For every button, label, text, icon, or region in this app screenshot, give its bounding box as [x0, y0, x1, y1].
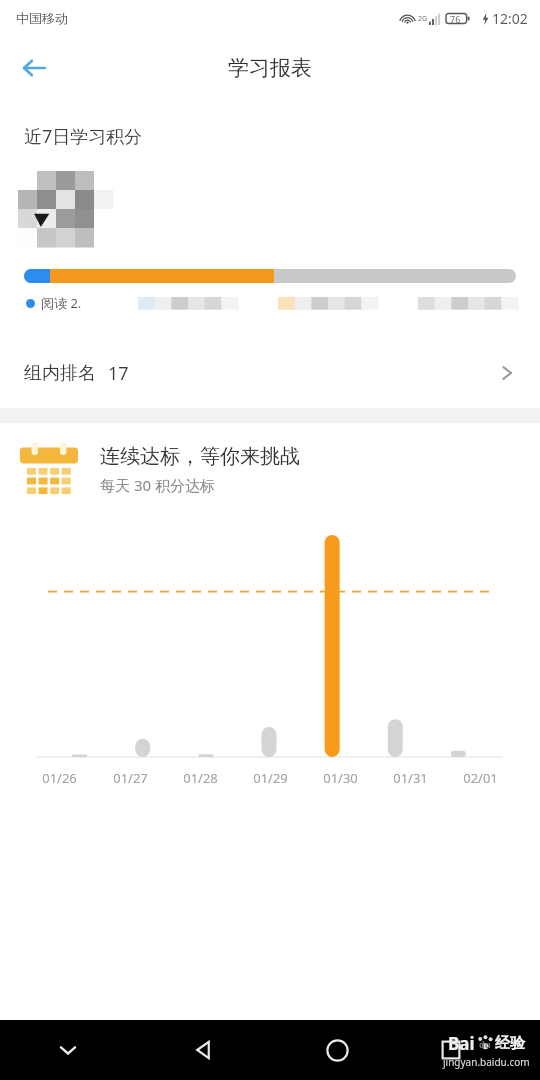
staticText: 经验 — [495, 1034, 525, 1053]
button[interactable]: 连续达标，等你来挑战 — [0, 423, 540, 515]
staticText: jingyan.baidu.com — [443, 1055, 530, 1069]
staticText: 2G — [418, 14, 428, 24]
staticText: 01/31 — [393, 769, 428, 787]
staticText: 学习报表 — [228, 55, 312, 81]
staticText: 01/28 — [183, 769, 218, 787]
staticText: 01/26 — [42, 769, 77, 787]
button[interactable]: 返回 — [135, 1020, 270, 1080]
staticText: 01/27 — [113, 769, 148, 787]
staticText: 17 — [108, 361, 129, 386]
staticText: 每天 30 积分达标 — [100, 475, 215, 495]
staticText: 连续达标，等你来挑战 — [100, 444, 300, 469]
staticText: 中国移动 — [16, 10, 68, 26]
staticText: 02/01 — [463, 769, 498, 787]
staticText: 阅读 2. — [41, 294, 82, 312]
button[interactable]: 组内排名 — [0, 338, 540, 408]
button[interactable]: 主屏幕 — [270, 1020, 405, 1080]
button[interactable]: 返回 — [8, 42, 60, 94]
staticText: 01/29 — [253, 769, 288, 787]
staticText: 近7日学习积分 — [24, 124, 143, 149]
staticText: 组内排名 — [24, 362, 96, 385]
button[interactable]: 隐藏导航栏 — [0, 1020, 135, 1080]
button[interactable]: 最近任务 — [405, 1020, 540, 1080]
staticText: 76 — [450, 13, 461, 25]
staticText: Bai — [448, 1032, 475, 1055]
staticText: 12:02 — [492, 9, 528, 28]
staticText: du — [479, 1038, 491, 1050]
staticText: 01/30 — [323, 769, 358, 787]
